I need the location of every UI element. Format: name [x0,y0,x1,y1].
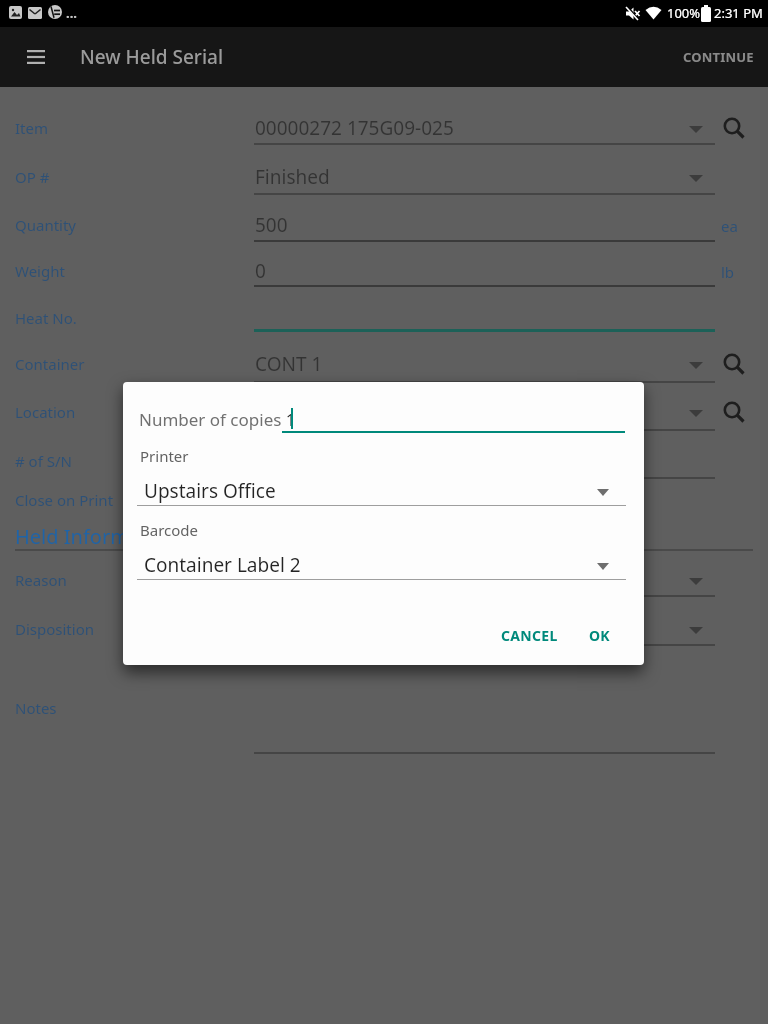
button[interactable] [133,472,633,508]
staticText: 500 [255,212,288,238]
staticText: CONTINUE [683,48,754,66]
staticText: ... [66,4,77,22]
staticText: New Held Serial [80,44,224,70]
button[interactable] [722,400,746,424]
button[interactable]: OK [575,617,623,653]
button[interactable] [0,106,768,150]
button[interactable] [0,203,768,247]
button[interactable] [27,50,45,64]
staticText: Disposition [15,619,94,639]
staticText: Upstairs Office [144,478,276,504]
button[interactable] [0,296,768,340]
button[interactable] [0,155,768,199]
staticText: Item [15,118,48,138]
button[interactable] [722,352,746,376]
staticText: 2:31 PM [714,4,763,22]
staticText: Number of copies 1 [139,408,296,431]
staticText: Printer [140,446,189,466]
staticText: Barcode [140,520,199,540]
staticText: lb [721,262,735,282]
staticText: 0 [255,258,266,284]
staticText: Held Information [15,523,177,550]
staticText: ea [721,216,738,236]
staticText: # of S/N [15,451,72,471]
staticText: Container Label 2 [144,552,301,578]
button[interactable] [0,390,768,434]
staticText: 100% [667,4,701,22]
button[interactable] [0,249,768,293]
staticText: Close on Print [15,490,114,510]
button[interactable] [0,607,768,651]
staticText: Location [15,402,76,422]
staticText: Weight [15,261,65,281]
button[interactable] [0,558,768,602]
staticText: CANCEL [501,626,558,645]
button[interactable]: CONTINUE [670,37,766,77]
staticText: Quantity [15,215,77,235]
button[interactable] [722,116,746,140]
staticText: Heat No. [15,308,77,328]
staticText: 00000272 175G09-025 [255,115,454,141]
staticText: OK [589,626,610,645]
staticText: Notes [15,698,57,718]
button[interactable]: CANCEL [497,617,561,653]
staticText: Container [15,354,85,374]
staticText: Finished [255,164,330,190]
button[interactable] [133,546,633,582]
staticText: CONT 1 [255,351,323,377]
button[interactable] [0,342,768,386]
staticText: OP # [15,167,50,187]
button[interactable] [0,439,768,483]
button[interactable] [133,400,633,440]
staticText: Reason [15,570,67,590]
button[interactable] [0,478,768,522]
